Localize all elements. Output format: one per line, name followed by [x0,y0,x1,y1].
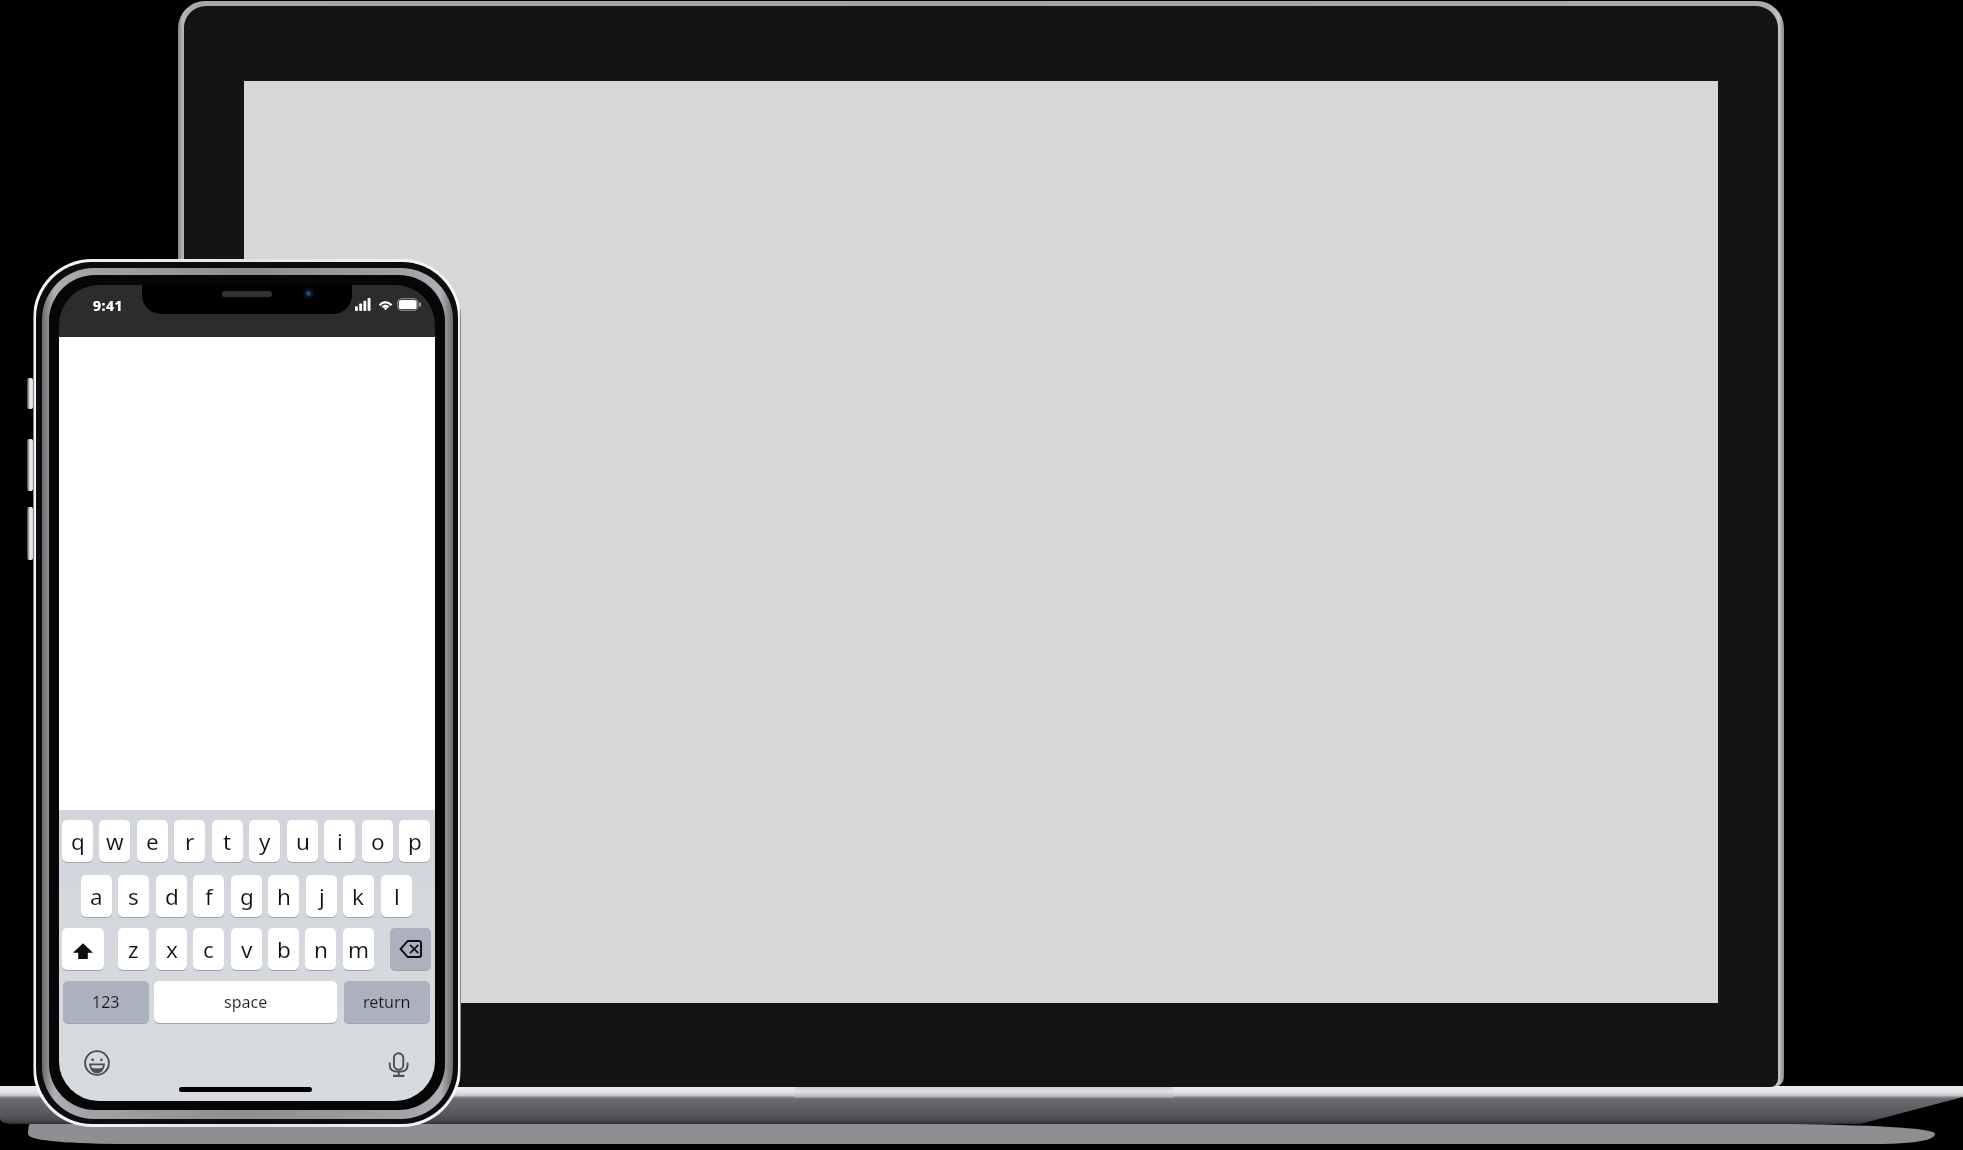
button[interactable]: h [268,875,299,917]
button[interactable]: space [154,981,337,1023]
button[interactable]: i [324,820,355,862]
button[interactable]: return [344,981,430,1023]
button[interactable]: l [381,875,412,917]
button[interactable]: a [81,875,112,917]
button[interactable]: m [343,928,374,970]
button[interactable]: u [287,820,318,862]
button[interactable]: v [231,928,262,970]
staticText: v [241,934,253,965]
staticText: q [71,826,85,857]
staticText: l [394,881,400,912]
staticText: x [166,934,178,965]
staticText: h [277,881,291,912]
staticText: s [128,881,139,912]
button[interactable]: Backspace [390,928,431,970]
staticText: m [348,934,370,965]
staticText: a [90,881,103,912]
staticText: u [296,826,310,857]
button[interactable]: k [343,875,374,917]
button[interactable]: o [362,820,393,862]
staticText: w [106,826,124,857]
staticText: k [352,881,365,912]
button[interactable]: w [99,820,130,862]
button[interactable]: Dictation [386,1051,412,1077]
staticText: g [240,881,254,912]
staticText: y [259,826,271,857]
staticText: e [146,826,159,857]
staticText: t [223,826,232,857]
button[interactable]: f [193,875,224,917]
staticText: space [224,991,268,1013]
staticText: r [185,826,195,857]
button[interactable]: Emoji [84,1050,110,1076]
staticText: c [203,934,214,965]
button[interactable]: p [399,820,430,862]
staticText: n [314,934,328,965]
staticText: z [128,934,139,965]
staticText: d [165,881,179,912]
button[interactable]: z [118,928,149,970]
button[interactable]: n [305,928,336,970]
button[interactable]: x [156,928,187,970]
button[interactable]: r [174,820,205,862]
button[interactable]: y [249,820,280,862]
staticText: f [205,881,213,912]
staticText: o [371,826,385,857]
staticText: j [319,881,325,912]
staticText: p [408,826,422,857]
staticText: 123 [92,991,120,1013]
staticText: i [337,826,343,857]
button[interactable]: t [212,820,243,862]
staticText: b [277,934,291,965]
button[interactable]: q [62,820,93,862]
staticText: 9:41 [93,296,124,315]
button[interactable]: Shift [62,928,104,970]
button[interactable]: s [118,875,149,917]
button[interactable]: g [231,875,262,917]
button[interactable]: c [193,928,224,970]
button[interactable]: d [156,875,187,917]
button[interactable]: 123 [63,981,149,1023]
button[interactable]: e [137,820,168,862]
button[interactable]: b [268,928,299,970]
button[interactable]: j [306,875,337,917]
staticText: return [363,991,411,1013]
